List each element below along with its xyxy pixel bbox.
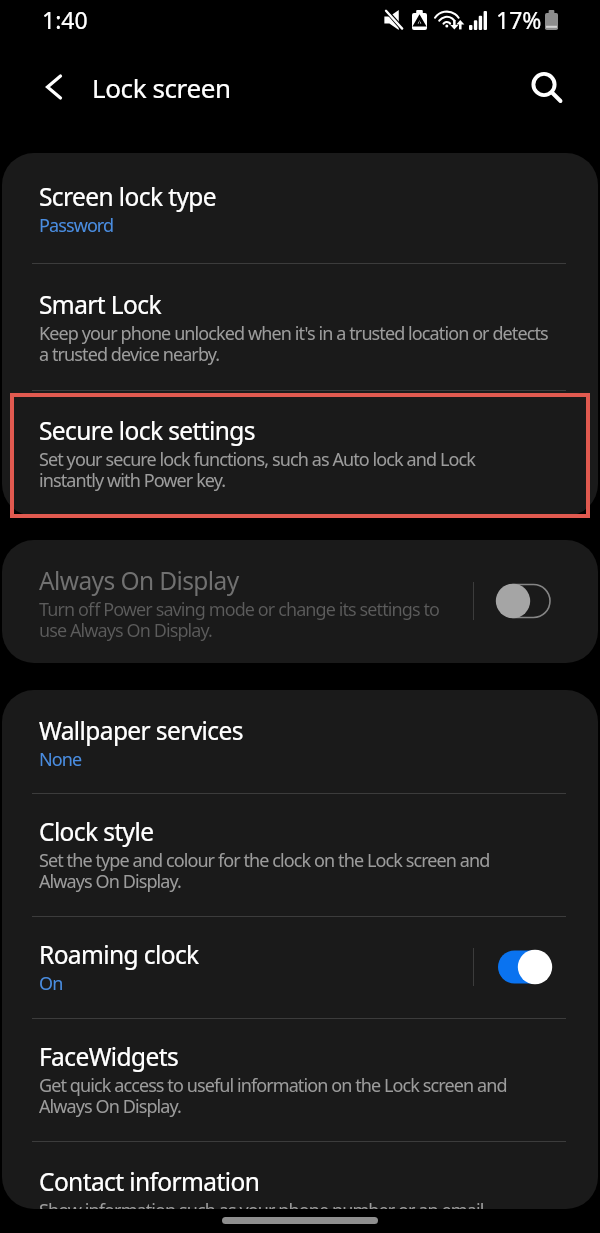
staticText: Secure lock settings [39, 414, 255, 447]
button[interactable] [2, 153, 598, 263]
staticText: Show information such as your phone numb… [39, 1198, 484, 1233]
staticText: Wallpaper services [39, 714, 243, 747]
button[interactable] [2, 1018, 598, 1141]
button[interactable]: Roaming clock [480, 936, 568, 998]
staticText: Keep your phone unlocked when it's in a … [39, 321, 548, 366]
staticText: Turn off Power saving mode or change its… [39, 597, 439, 642]
button[interactable] [2, 793, 598, 916]
button[interactable] [2, 1141, 598, 1209]
button[interactable] [2, 690, 598, 793]
staticText: Set your secure lock functions, such as … [39, 447, 475, 492]
staticText: Lock screen [92, 70, 231, 105]
button[interactable] [2, 263, 598, 390]
staticText: On [39, 971, 63, 996]
staticText: None [39, 747, 82, 772]
button[interactable]: Always On Display [480, 570, 568, 632]
staticText: Always On Display [39, 564, 239, 597]
staticText: 17% [496, 4, 542, 35]
staticText: Screen lock type [39, 180, 216, 213]
staticText: Contact information [39, 1165, 260, 1198]
button[interactable] [2, 540, 598, 663]
staticText: 1:40 [42, 4, 88, 35]
staticText: Clock style [39, 815, 154, 848]
button[interactable]: Search [522, 62, 570, 110]
staticText: Password [39, 213, 114, 238]
button[interactable] [2, 916, 598, 1018]
staticText: Get quick access to useful information o… [39, 1073, 507, 1118]
staticText: Set the type and colour for the clock on… [39, 848, 490, 893]
button[interactable]: Navigate up [32, 62, 80, 110]
staticText: Smart Lock [39, 288, 161, 321]
staticText: FaceWidgets [39, 1040, 179, 1073]
button[interactable] [2, 390, 598, 516]
staticText: Roaming clock [39, 938, 199, 971]
